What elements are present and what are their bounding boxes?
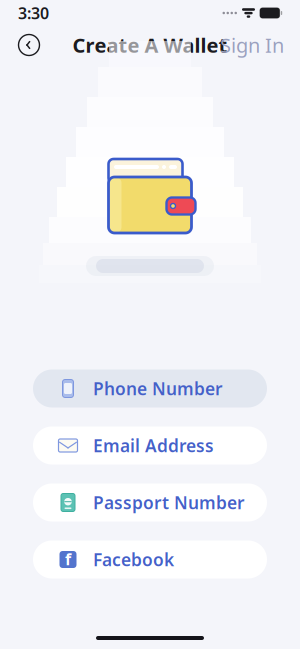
button[interactable]: Phone Number xyxy=(33,369,267,407)
button[interactable]: Passport Number xyxy=(33,483,267,521)
staticText: f xyxy=(65,548,71,570)
staticText: Email Address xyxy=(93,434,214,457)
staticText: Phone Number xyxy=(93,377,223,400)
staticText: 3:30 xyxy=(18,2,49,24)
button[interactable]: Back xyxy=(12,28,46,62)
staticText: Passport Number xyxy=(93,491,245,514)
staticText: Facebook xyxy=(93,548,174,571)
staticText: Sign In xyxy=(220,32,284,58)
button[interactable]: Sign In xyxy=(216,28,288,62)
button[interactable]: f xyxy=(33,540,267,578)
button[interactable]: Email Address xyxy=(33,426,267,464)
staticText: Create A Wallet xyxy=(72,32,227,58)
